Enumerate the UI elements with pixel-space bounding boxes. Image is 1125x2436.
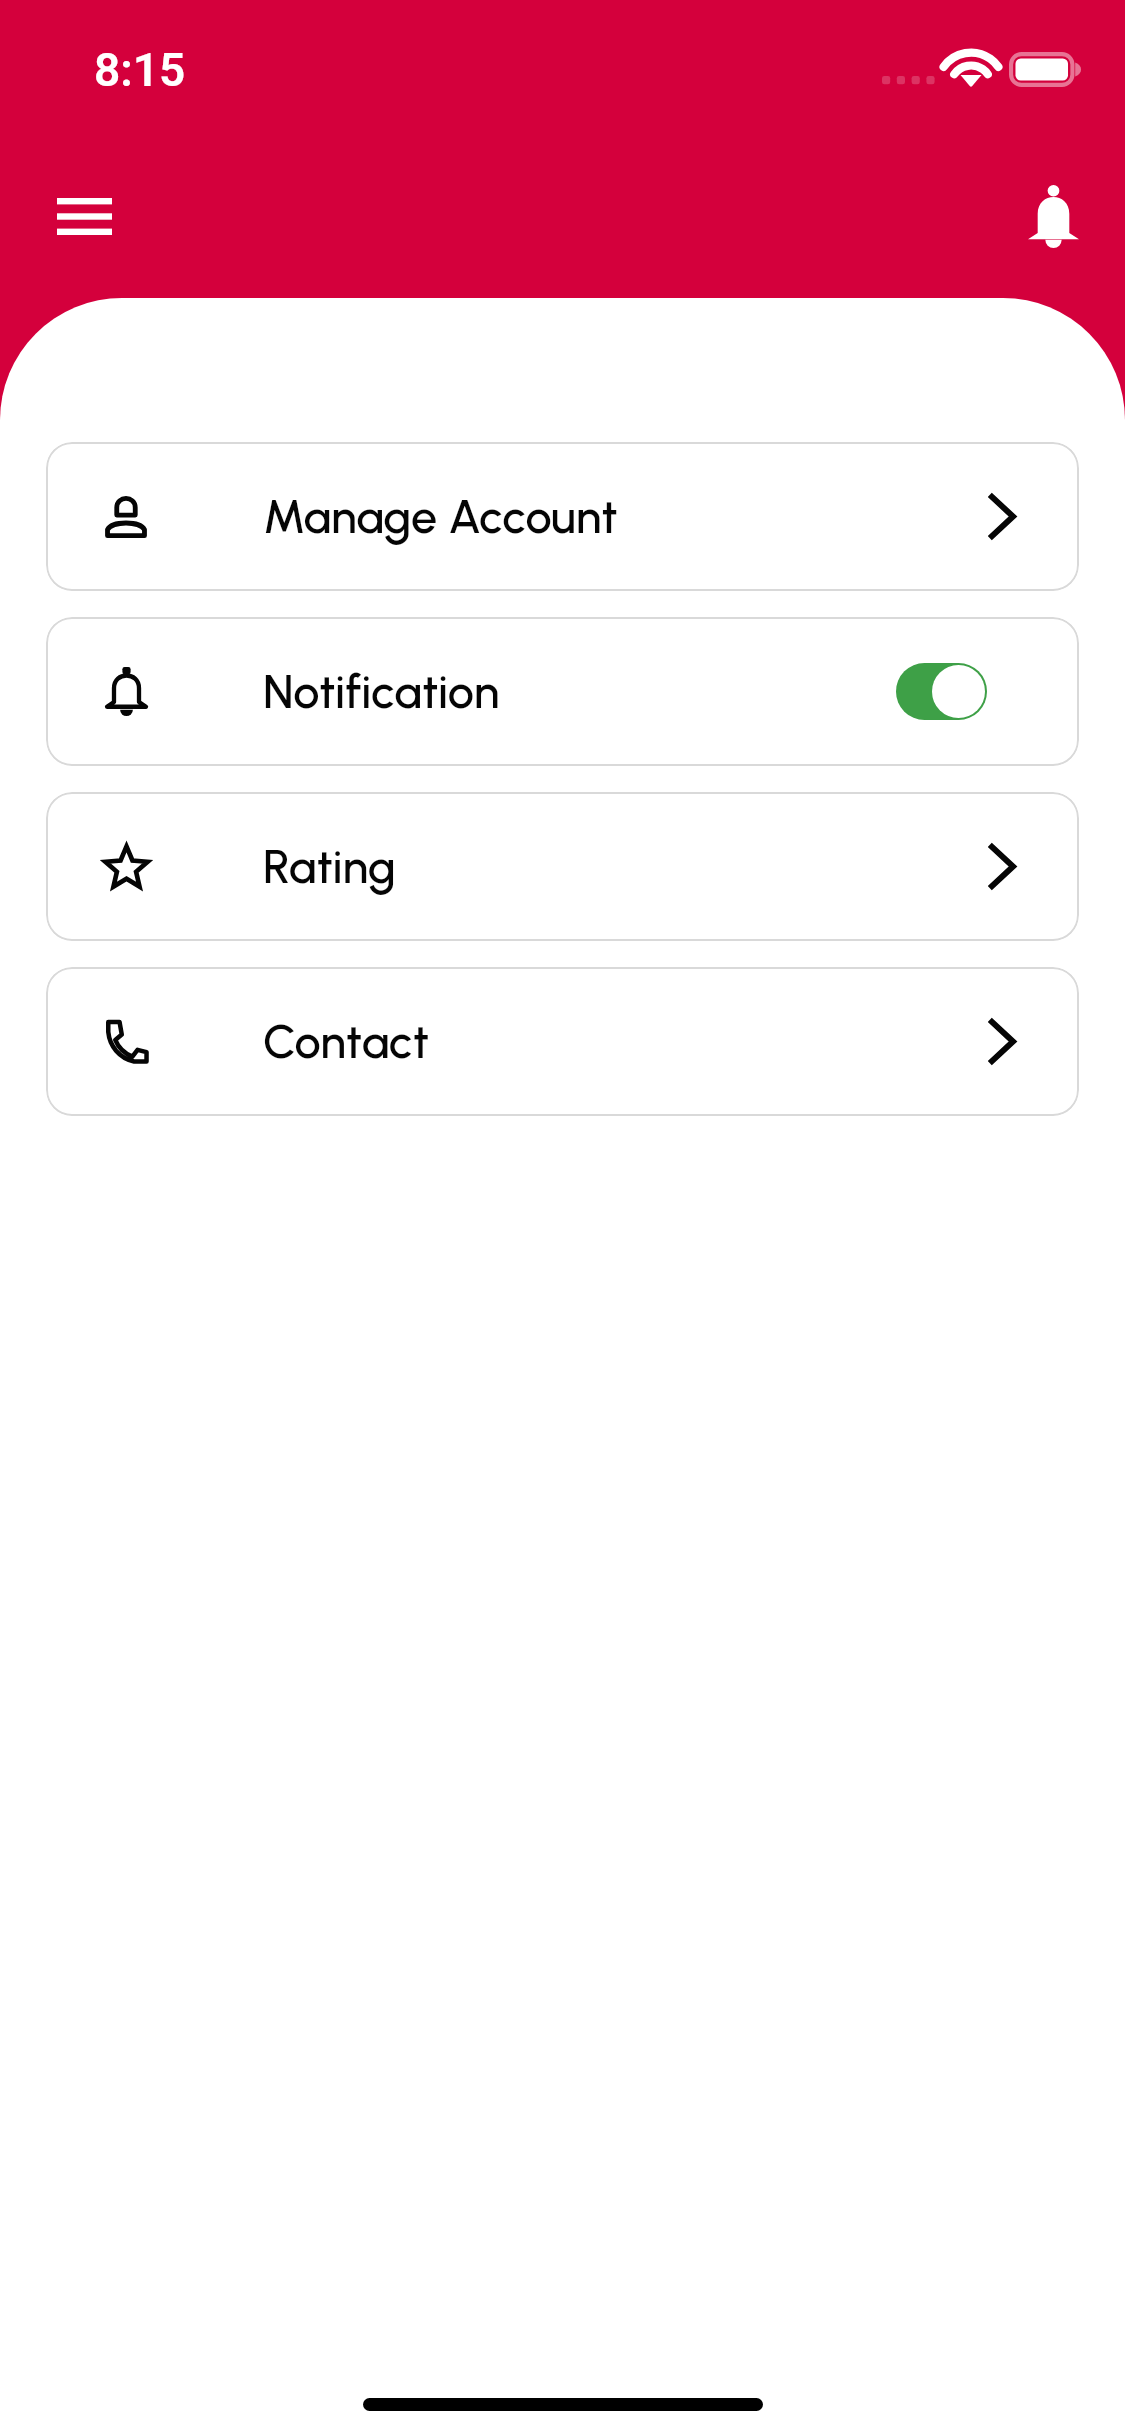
button[interactable]: Contact (46, 967, 1079, 1116)
button[interactable]: Notification toggle, on (896, 663, 987, 720)
button[interactable]: Notification (46, 617, 1079, 766)
button[interactable]: Open navigation menu (28, 188, 140, 244)
staticText: 8:15 (94, 43, 186, 97)
staticText: Notification (263, 664, 500, 720)
button[interactable]: Notifications (1008, 172, 1098, 260)
button[interactable]: Rating (46, 792, 1079, 941)
staticText: Rating (263, 839, 396, 895)
staticText: Contact (263, 1014, 430, 1070)
button[interactable]: Manage Account (46, 442, 1079, 591)
staticText: Manage Account (263, 489, 618, 545)
